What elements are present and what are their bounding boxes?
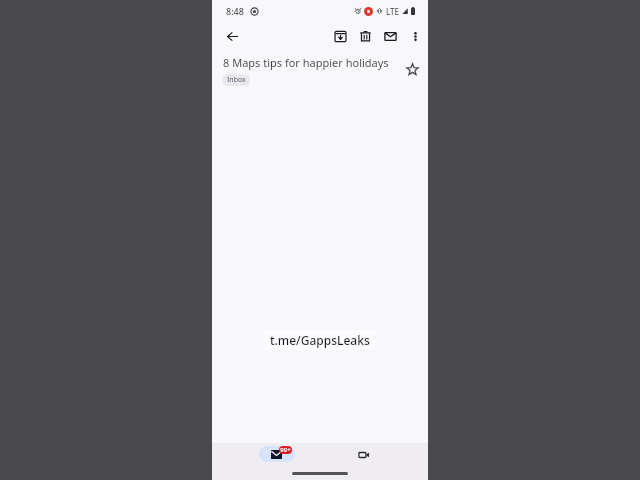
staticText: LTE [386, 6, 400, 17]
staticText: Inbox [227, 75, 246, 85]
staticText: 99+ [280, 446, 291, 454]
button[interactable]: Inbox [223, 74, 250, 86]
staticText: 8:48 [226, 5, 244, 17]
button[interactable]: Delete [353, 24, 378, 49]
button[interactable]: Archive [328, 24, 353, 49]
button[interactable]: More options [403, 24, 428, 49]
button[interactable]: Meet [354, 445, 374, 465]
button[interactable]: Back [220, 24, 244, 48]
button[interactable]: Star [401, 58, 423, 80]
staticText: 8 Maps tips for happier holidays [223, 55, 389, 70]
button[interactable]: Mark unread [378, 24, 403, 49]
button[interactable]: Mail [259, 446, 295, 462]
staticText: t.me/GappsLeaks [270, 332, 370, 348]
